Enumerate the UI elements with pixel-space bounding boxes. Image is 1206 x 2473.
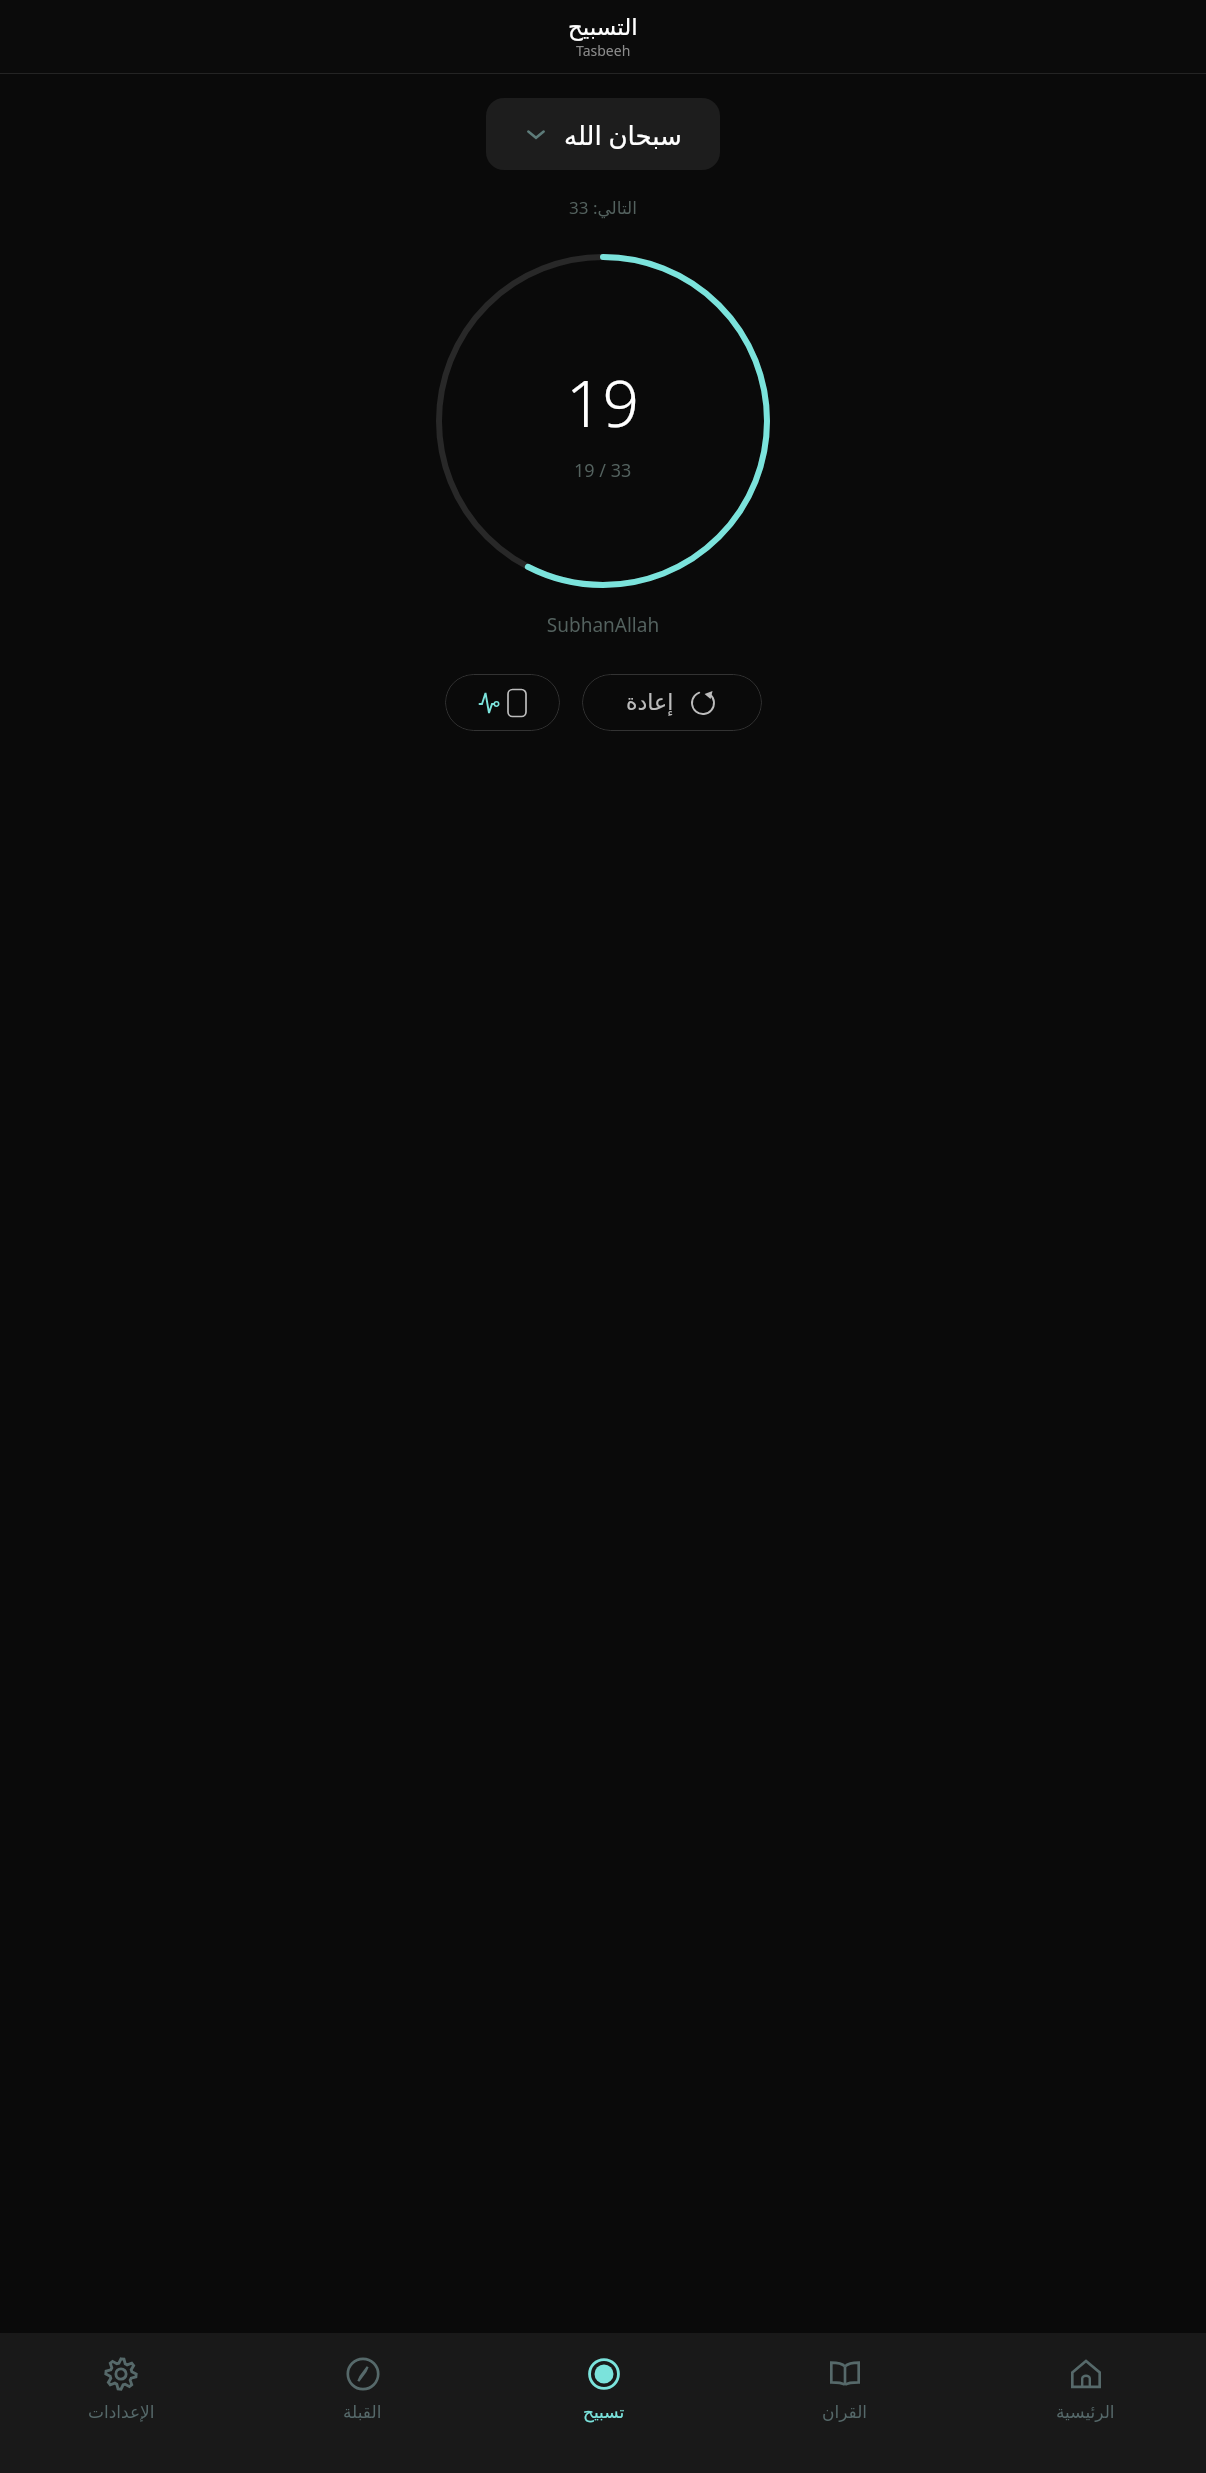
button[interactable]: Toggle vibration bbox=[445, 674, 560, 731]
staticText: تسبيح bbox=[583, 2402, 625, 2422]
staticText: التسبيح bbox=[568, 14, 638, 41]
button[interactable]: الرئيسية bbox=[965, 2333, 1206, 2473]
staticText: التالي: 33 bbox=[0, 196, 1206, 219]
staticText: SubhanAllah bbox=[0, 612, 1206, 638]
button[interactable]: إعادة bbox=[582, 674, 762, 731]
button[interactable]: تسبيح bbox=[483, 2333, 724, 2473]
button[interactable]: القبلة bbox=[242, 2333, 483, 2473]
staticText: الإعدادات bbox=[88, 2402, 155, 2422]
staticText: إعادة bbox=[626, 690, 674, 716]
button[interactable]: القران bbox=[724, 2333, 965, 2473]
staticText: Tasbeeh bbox=[576, 41, 631, 60]
staticText: 19 bbox=[566, 359, 640, 446]
staticText: الرئيسية bbox=[1056, 2402, 1115, 2422]
button[interactable]: الإعدادات bbox=[0, 2333, 242, 2473]
button[interactable]: 19 bbox=[436, 254, 770, 588]
staticText: سبحان الله bbox=[564, 117, 682, 152]
staticText: 19 / 33 bbox=[574, 458, 632, 483]
button[interactable]: سبحان الله bbox=[486, 98, 720, 170]
staticText: القبلة bbox=[343, 2402, 382, 2422]
staticText: القران bbox=[822, 2402, 868, 2422]
